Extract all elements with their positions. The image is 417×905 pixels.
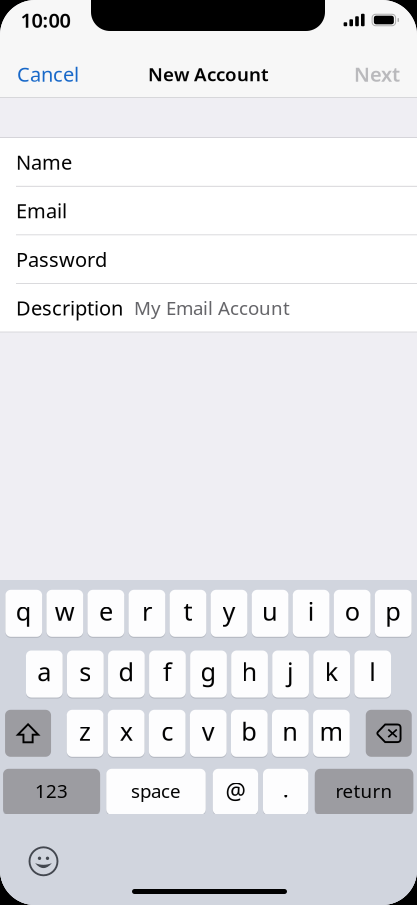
button[interactable]: Name <box>0 138 417 187</box>
staticText: Next <box>354 61 400 87</box>
staticText: a <box>37 655 51 688</box>
button[interactable]: . <box>263 769 308 815</box>
button[interactable]: h <box>231 650 268 697</box>
staticText: d <box>118 655 134 688</box>
staticText: p <box>385 594 401 628</box>
button[interactable]: q <box>5 590 42 637</box>
staticText: 10:00 <box>20 7 70 33</box>
staticText: v <box>202 714 215 748</box>
button[interactable]: Emoji keyboard <box>0 847 57 875</box>
staticText: h <box>242 655 258 688</box>
button[interactable]: k <box>313 650 350 697</box>
staticText: 123 <box>35 778 68 803</box>
staticText: k <box>325 655 339 688</box>
button[interactable]: o <box>334 590 370 637</box>
staticText: g <box>200 655 216 688</box>
button[interactable]: l <box>354 650 391 697</box>
staticText: New Account <box>148 62 269 86</box>
staticText: Password <box>16 246 107 272</box>
staticText: f <box>163 655 172 688</box>
staticText: x <box>120 714 133 748</box>
staticText: l <box>369 655 376 688</box>
button[interactable]: Shift <box>5 710 51 757</box>
button[interactable]: Next <box>337 50 417 98</box>
staticText: q <box>16 594 32 628</box>
button[interactable]: r <box>129 590 165 637</box>
button[interactable]: u <box>252 590 288 637</box>
staticText: z <box>79 714 91 748</box>
button[interactable]: j <box>272 650 309 697</box>
staticText: u <box>262 594 278 628</box>
staticText: j <box>287 655 294 688</box>
button[interactable]: e <box>87 590 124 637</box>
staticText: @ <box>225 776 245 806</box>
button[interactable]: x <box>108 710 144 757</box>
staticText: Description <box>16 294 123 321</box>
staticText: c <box>161 714 173 748</box>
staticText: i <box>308 594 315 628</box>
staticText: . <box>283 774 289 804</box>
staticText: y <box>222 594 235 628</box>
button[interactable]: Password <box>0 235 417 284</box>
button[interactable]: v <box>190 710 227 757</box>
staticText: space <box>131 778 181 803</box>
button[interactable]: space <box>106 769 206 815</box>
button[interactable]: i <box>293 590 329 637</box>
button[interactable]: s <box>67 650 104 697</box>
staticText: n <box>282 714 298 748</box>
button[interactable]: g <box>190 650 227 697</box>
button[interactable]: w <box>46 590 83 637</box>
button[interactable]: c <box>149 710 186 757</box>
button[interactable]: Cancel <box>0 50 96 98</box>
button[interactable]: Delete <box>366 710 412 757</box>
button[interactable]: z <box>67 710 103 757</box>
staticText: b <box>241 714 257 748</box>
staticText: m <box>319 714 343 748</box>
staticText: t <box>183 594 192 628</box>
button[interactable]: y <box>211 590 247 637</box>
button[interactable]: d <box>108 650 145 697</box>
staticText: My Email Account <box>134 295 290 320</box>
button[interactable]: a <box>26 650 63 697</box>
button[interactable]: Description <box>0 284 417 332</box>
staticText: o <box>345 594 360 628</box>
button[interactable]: n <box>272 710 309 757</box>
staticText: Email <box>16 197 67 224</box>
button[interactable]: 123 <box>3 769 100 815</box>
staticText: return <box>335 778 392 803</box>
staticText: r <box>142 594 152 628</box>
button[interactable]: f <box>149 650 186 697</box>
staticText: Name <box>16 149 72 175</box>
button[interactable]: p <box>375 590 412 637</box>
staticText: s <box>79 655 91 688</box>
button[interactable]: Email <box>0 187 417 235</box>
staticText: Cancel <box>17 61 79 87</box>
button[interactable]: m <box>313 710 350 757</box>
staticText: e <box>99 594 113 628</box>
button[interactable]: @ <box>213 769 258 815</box>
staticText: w <box>55 594 75 628</box>
button[interactable]: t <box>170 590 206 637</box>
button[interactable]: b <box>231 710 268 757</box>
button[interactable]: return <box>315 769 413 815</box>
